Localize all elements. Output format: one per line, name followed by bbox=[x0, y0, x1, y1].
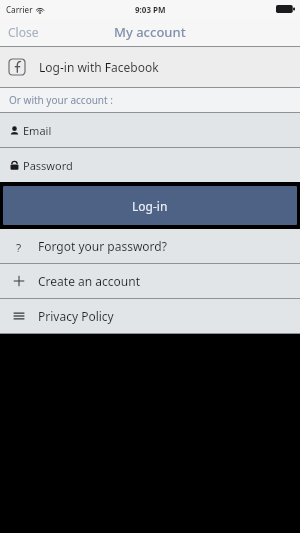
staticText: Privacy Policy bbox=[38, 308, 114, 324]
button[interactable]: Email bbox=[0, 113, 300, 147]
button[interactable]: Log-in bbox=[3, 186, 297, 225]
staticText: ? bbox=[16, 240, 22, 252]
other: Facebook bbox=[9, 59, 25, 75]
other: Battery full bbox=[276, 5, 295, 13]
staticText: Create an account bbox=[38, 273, 140, 289]
staticText: Log-in with Facebook bbox=[39, 59, 159, 75]
other: Wi-Fi signal bbox=[36, 6, 44, 14]
staticText: Forgot your password? bbox=[38, 238, 167, 254]
staticText: Log-in bbox=[132, 198, 168, 214]
button[interactable]: ? bbox=[0, 229, 300, 263]
staticText: 9:03 PM bbox=[135, 4, 166, 15]
button[interactable]: Privacy Policy bbox=[0, 299, 300, 333]
other: Privacy Policy bbox=[13, 310, 25, 322]
button[interactable]: Close bbox=[0, 20, 47, 44]
staticText: Or with your account : bbox=[9, 93, 113, 107]
button[interactable]: Password bbox=[0, 148, 300, 182]
button[interactable]: Facebook bbox=[0, 47, 300, 87]
staticText: Email bbox=[23, 123, 52, 138]
staticText: Close bbox=[8, 24, 39, 40]
staticText: Password bbox=[23, 158, 73, 173]
button[interactable]: Create an account bbox=[0, 264, 300, 298]
other: Create an account bbox=[13, 275, 25, 287]
staticText: Carrier bbox=[6, 4, 33, 15]
staticText: My account bbox=[114, 23, 186, 41]
